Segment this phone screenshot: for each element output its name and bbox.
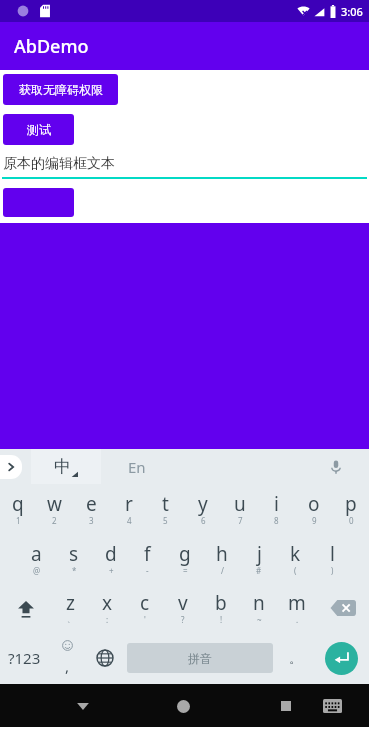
staticText: - (146, 565, 149, 576)
staticText: , (65, 656, 70, 676)
button[interactable]: f (129, 534, 166, 584)
button[interactable]: r (110, 484, 147, 534)
staticText: t (162, 491, 169, 517)
staticText: / (221, 565, 224, 576)
staticText: # (256, 565, 262, 576)
staticText: f (144, 541, 151, 567)
button[interactable]: ?123 (0, 632, 49, 684)
staticText: ? (181, 614, 185, 625)
button[interactable]: Back (66, 689, 100, 723)
staticText: w (47, 491, 62, 517)
button[interactable]: i (258, 484, 295, 534)
staticText: @ (33, 565, 41, 576)
button[interactable]: 获取无障碍权限 (3, 74, 118, 105)
staticText: 4 (127, 515, 132, 526)
staticText: d (105, 541, 117, 567)
staticText: v (178, 590, 188, 616)
staticText: ?123 (8, 648, 41, 668)
button[interactable]: Recents (269, 689, 303, 723)
staticText: 9 (312, 515, 317, 526)
button[interactable]: a (18, 534, 55, 584)
staticText: : (106, 614, 109, 625)
staticText: AbDemo (14, 34, 89, 59)
staticText: b (215, 590, 227, 616)
button[interactable]: m (278, 584, 316, 632)
button[interactable]: y (184, 484, 221, 534)
button[interactable]: Shift (0, 584, 52, 632)
staticText: . (296, 614, 299, 625)
staticText: ~ (257, 614, 262, 625)
button[interactable]: t (147, 484, 184, 534)
staticText: q (12, 491, 24, 517)
button[interactable]: v (164, 584, 202, 632)
staticText: ) (331, 565, 334, 576)
button[interactable]: u (221, 484, 258, 534)
staticText: 中 (54, 456, 71, 477)
button[interactable]: 中 (31, 449, 101, 484)
button[interactable]: 原本的编辑框文本 (0, 153, 369, 179)
staticText: y (198, 491, 208, 517)
button[interactable]: Backspace (316, 584, 369, 632)
button[interactable]: s (55, 534, 92, 584)
staticText: e (86, 491, 97, 517)
button[interactable]: Expand toolbar (0, 455, 22, 479)
staticText: = (183, 565, 188, 576)
button[interactable]: Enter (325, 642, 358, 675)
button[interactable]: c (126, 584, 164, 632)
staticText: c (140, 590, 150, 616)
staticText: 6 (201, 515, 206, 526)
button[interactable]: k (277, 534, 314, 584)
staticText: 8 (274, 515, 279, 526)
button[interactable]: , (49, 632, 86, 684)
button[interactable]: Voice input (325, 456, 347, 478)
button[interactable]: e (73, 484, 110, 534)
button[interactable]: 拼音 (127, 643, 273, 673)
staticText: h (216, 541, 228, 567)
staticText: 。 (289, 650, 302, 666)
button[interactable]: Switch language (86, 632, 123, 684)
button[interactable]: d (92, 534, 129, 584)
staticText: 获取无障碍权限 (19, 82, 103, 97)
staticText: 1 (16, 515, 21, 526)
button[interactable]: h (203, 534, 240, 584)
staticText: o (308, 491, 320, 517)
staticText: ' (144, 614, 146, 625)
staticText: x (102, 590, 113, 616)
button[interactable]: p (332, 484, 369, 534)
button[interactable]: 。 (277, 632, 314, 684)
staticText: a (31, 541, 42, 567)
staticText: 0 (349, 515, 354, 526)
staticText: ( (294, 565, 297, 576)
staticText: 7 (238, 515, 243, 526)
staticText: s (69, 541, 79, 567)
staticText: j (257, 541, 262, 567)
staticText: z (66, 590, 75, 616)
button[interactable]: En (128, 457, 146, 477)
button[interactable]: o (295, 484, 332, 534)
staticText: u (234, 491, 246, 517)
button[interactable]: j (240, 534, 277, 584)
staticText: l (330, 541, 335, 567)
button[interactable]: 测试 (3, 114, 74, 145)
staticText: 原本的编辑框文本 (3, 155, 115, 173)
staticText: * (72, 565, 77, 576)
button[interactable]: Action (3, 188, 74, 217)
staticText: n (253, 590, 265, 616)
staticText: p (345, 491, 357, 517)
staticText: i (274, 491, 279, 517)
button[interactable]: x (89, 584, 126, 632)
button[interactable]: l (314, 534, 351, 584)
button[interactable]: z (52, 584, 89, 632)
button[interactable]: n (240, 584, 278, 632)
button[interactable]: w (36, 484, 73, 534)
button[interactable]: Home (166, 689, 200, 723)
button[interactable]: b (202, 584, 240, 632)
staticText: 测试 (27, 122, 51, 137)
staticText: k (290, 541, 301, 567)
button[interactable]: q (0, 484, 36, 534)
button[interactable]: g (166, 534, 203, 584)
staticText: m (288, 590, 306, 616)
button[interactable]: Keyboard (317, 691, 347, 721)
staticText: r (125, 491, 133, 517)
staticText: + (109, 565, 114, 576)
